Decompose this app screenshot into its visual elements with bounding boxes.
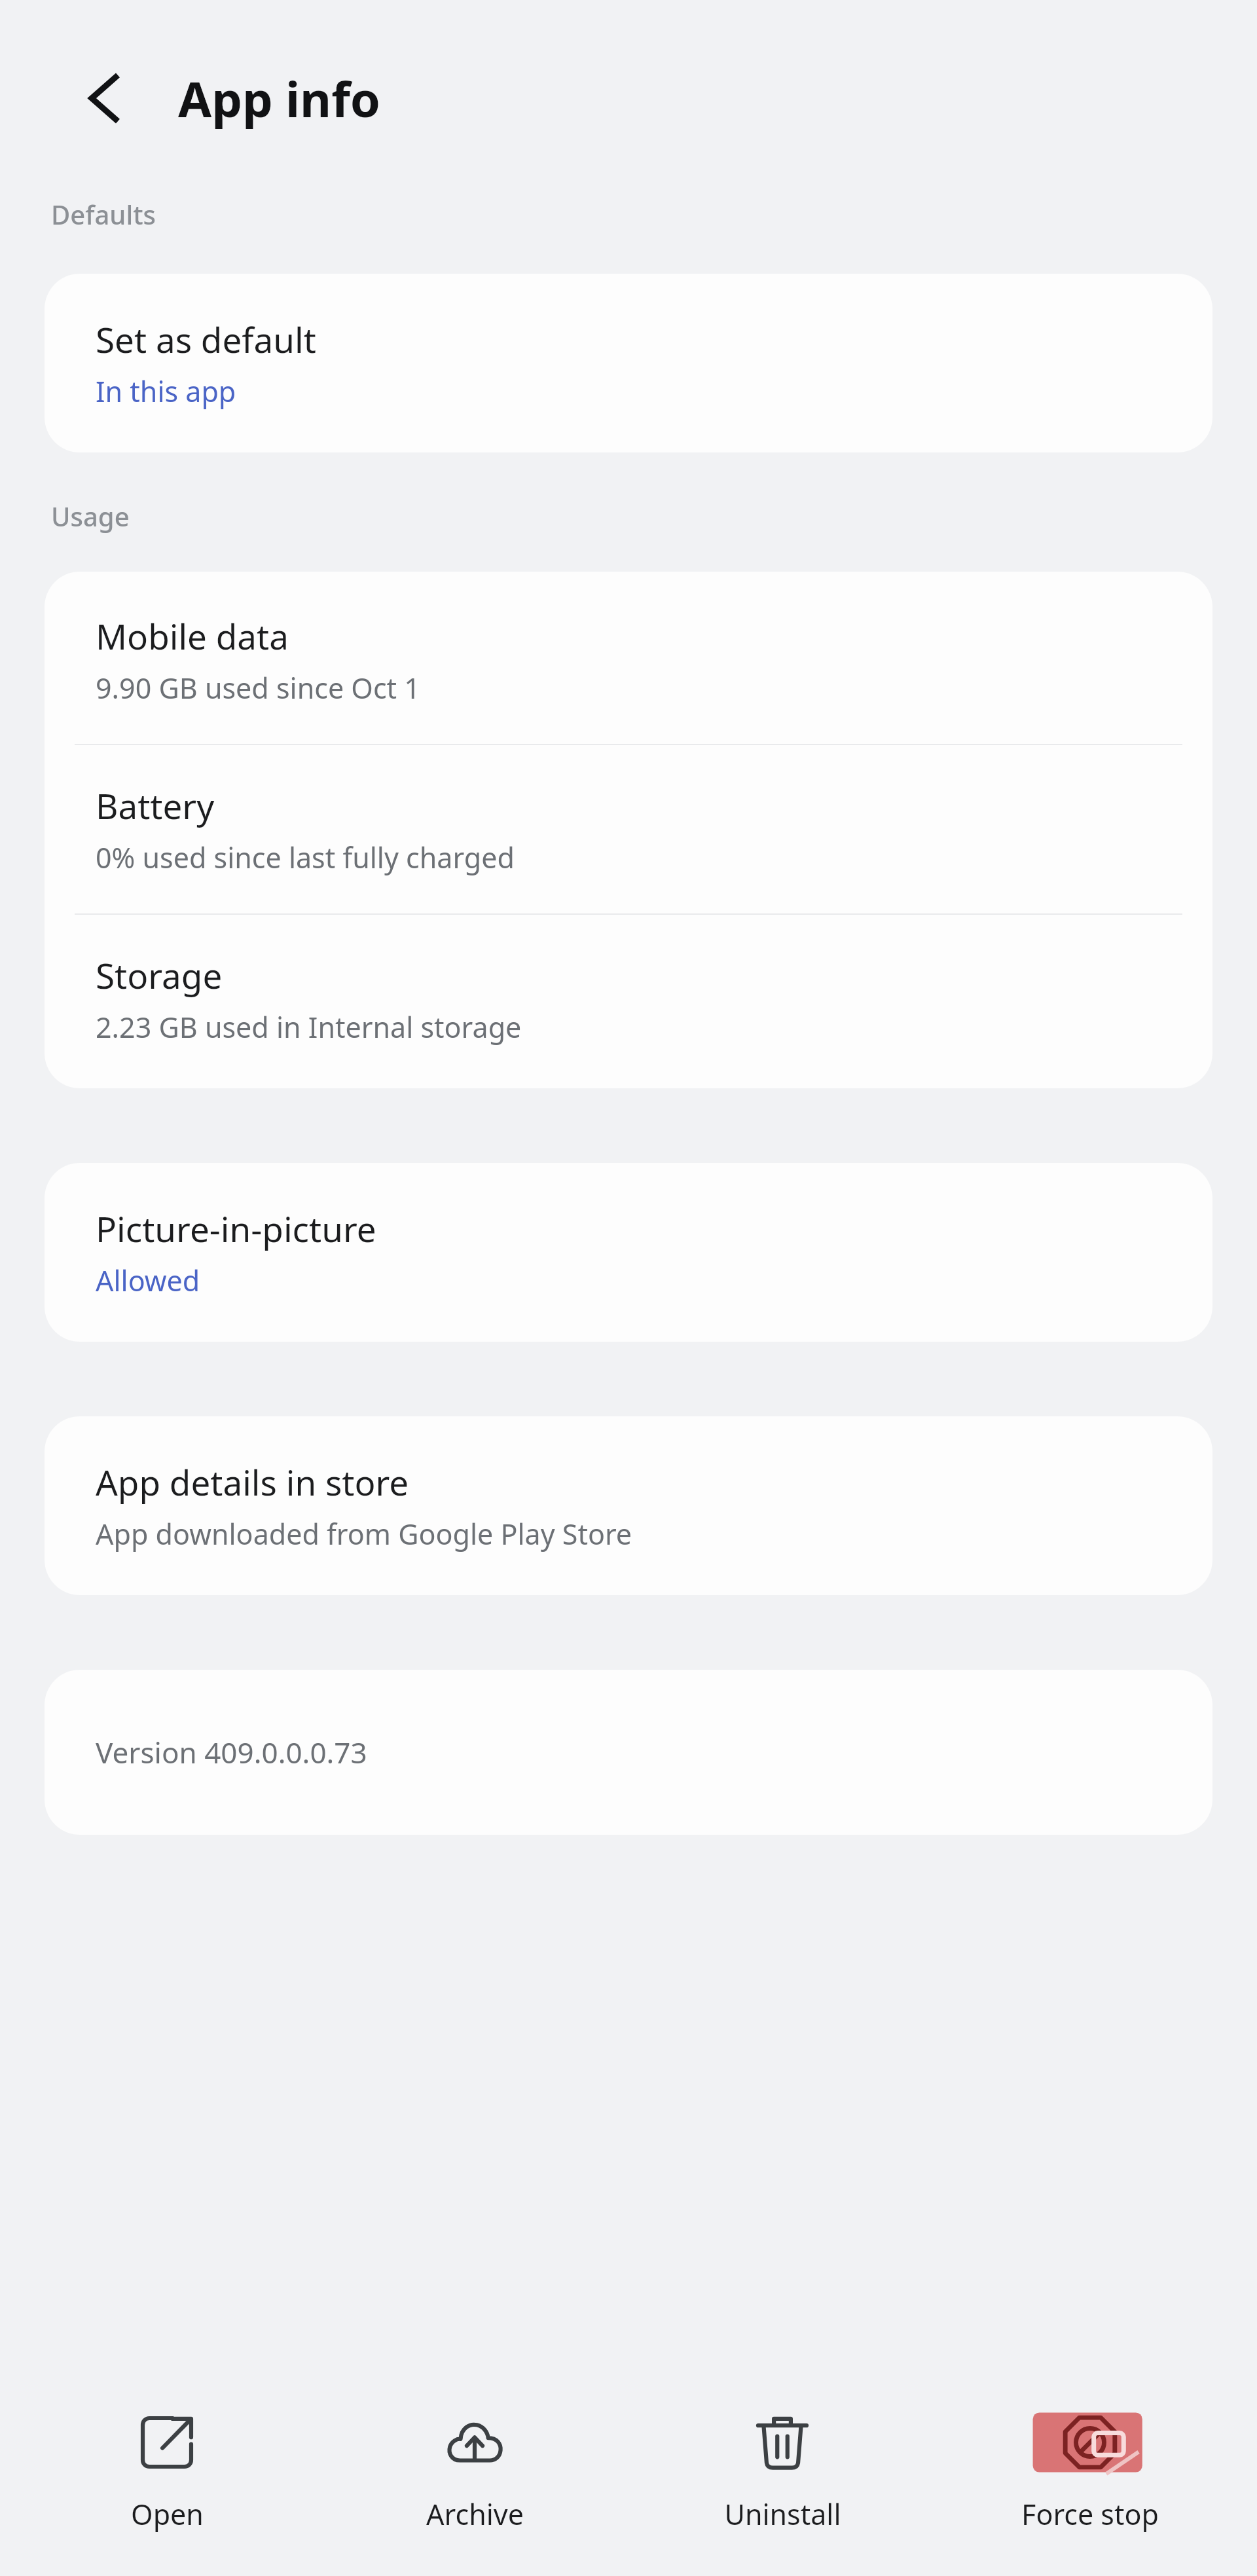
button[interactable]: Force stop — [949, 2391, 1231, 2545]
staticText: Usage — [51, 498, 130, 534]
button[interactable]: Uninstall — [642, 2391, 923, 2545]
staticText: 9.90 GB used since Oct 1 — [96, 669, 420, 707]
staticText: Archive — [426, 2495, 524, 2533]
staticText: Defaults — [51, 196, 156, 227]
staticText: Storage — [96, 951, 223, 999]
staticText: App info — [178, 65, 381, 132]
staticText: Allowed — [96, 1261, 200, 1300]
staticText: Version 409.0.0.0.73 — [96, 1733, 367, 1772]
staticText: Open — [131, 2495, 204, 2533]
staticText: Set as default — [96, 316, 316, 363]
staticText: 2.23 GB used in Internal storage — [96, 1008, 522, 1046]
button[interactable]: Picture-in-picture — [45, 1163, 1212, 1342]
staticText: Mobile data — [96, 612, 289, 659]
staticText: Uninstall — [724, 2495, 841, 2533]
button[interactable]: Mobile data — [45, 572, 1212, 744]
button[interactable]: Battery — [45, 745, 1212, 913]
button[interactable]: Back — [73, 64, 141, 132]
staticText: App downloaded from Google Play Store — [96, 1515, 632, 1553]
button[interactable]: Archive — [334, 2391, 615, 2545]
staticText: 0% used since last fully charged — [96, 838, 515, 877]
staticText: Battery — [96, 782, 215, 829]
button[interactable]: Set as default — [45, 274, 1212, 452]
staticText: App details in store — [96, 1458, 409, 1505]
staticText: Force stop — [1021, 2495, 1159, 2533]
button[interactable]: App details in store — [45, 1416, 1212, 1595]
staticText: Picture-in-picture — [96, 1205, 376, 1252]
button[interactable]: Storage — [45, 915, 1212, 1088]
staticText: In this app — [96, 372, 236, 411]
button[interactable]: Version 409.0.0.0.73 — [45, 1670, 1212, 1835]
button[interactable]: Open — [26, 2391, 308, 2545]
